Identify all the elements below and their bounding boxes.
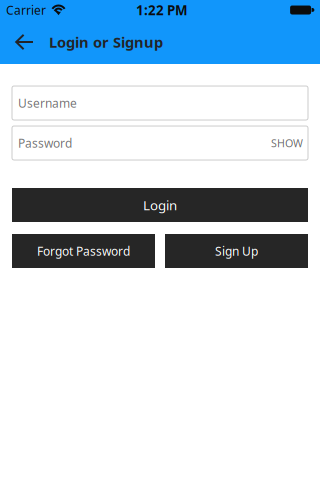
staticText: Password — [18, 135, 72, 151]
staticText: SHOW — [271, 136, 303, 150]
staticText: Login — [143, 196, 177, 214]
staticText: 1:22 PM — [136, 1, 188, 19]
staticText: Sign Up — [215, 243, 258, 259]
button[interactable]: Forgot Password — [12, 234, 155, 268]
staticText: Username — [18, 95, 77, 111]
staticText: Login or Signup — [49, 32, 163, 52]
button[interactable]: SHOW — [271, 136, 303, 150]
button[interactable]: Back — [0, 20, 49, 64]
staticText: Forgot Password — [37, 243, 130, 259]
staticText: Carrier — [6, 2, 46, 18]
button[interactable]: Sign Up — [165, 234, 308, 268]
button[interactable]: Login — [12, 188, 308, 222]
